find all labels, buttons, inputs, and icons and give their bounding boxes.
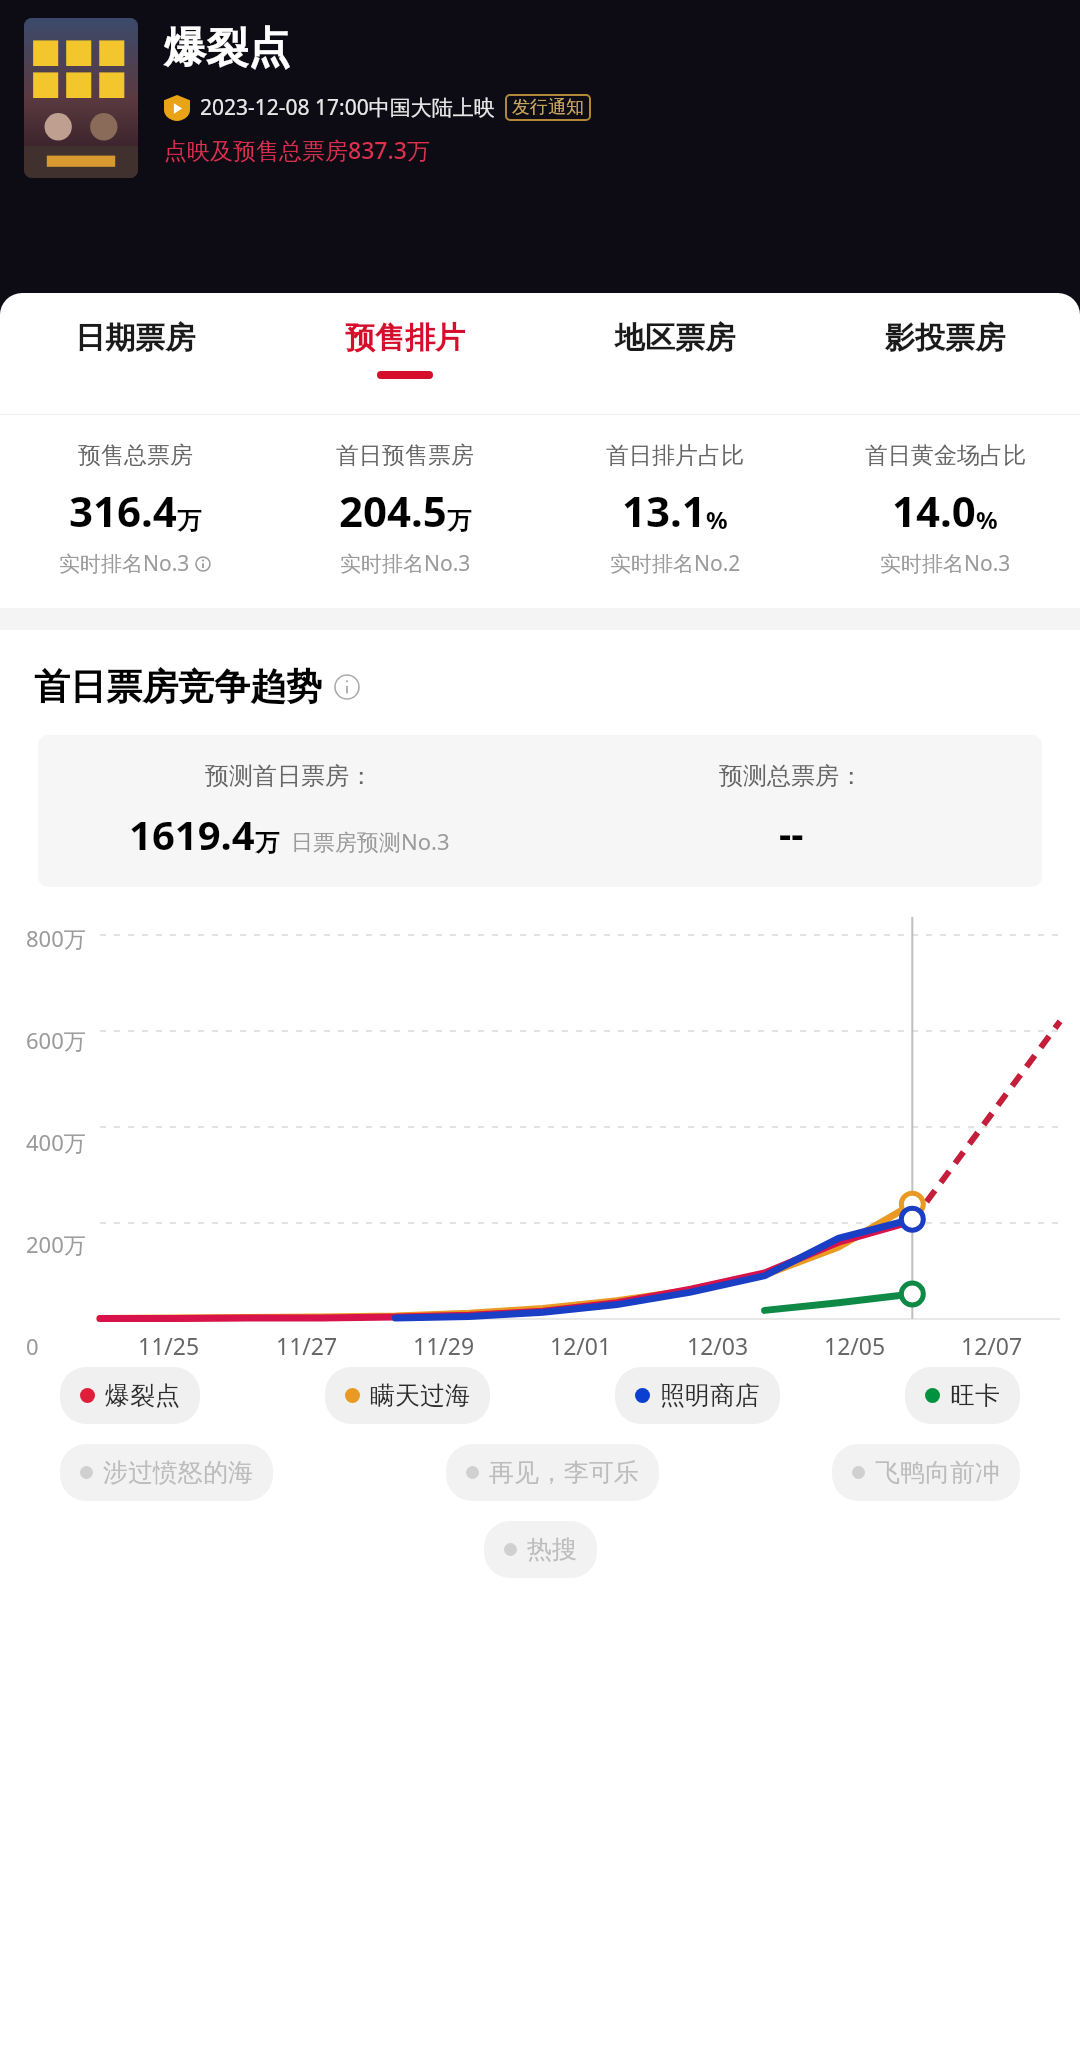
button[interactable]: 再见，李可乐 [446,1444,659,1501]
button[interactable]: 旺卡 [905,1367,1020,1424]
button[interactable]: 预测首日票房： [38,735,1042,887]
staticText: 200万 [26,1229,86,1259]
staticText: 预测首日票房： [205,761,373,791]
staticText: 11/27 [276,1330,338,1361]
staticText: 14.0 [892,482,976,539]
button[interactable]: 首日排片占比 [540,441,810,578]
button[interactable]: 预售排片 [270,319,540,415]
staticText: 旺卡 [950,1380,1000,1411]
button[interactable]: 首日黄金场占比 [810,441,1080,578]
staticText: 日期票房 [75,319,195,357]
staticText: 万 [177,506,201,536]
staticText: 点映及预售总票房837.3万 [164,134,430,165]
staticText: 400万 [26,1127,86,1157]
staticText: 实时排名No.3 [340,549,471,578]
button[interactable]: 影投票房 [810,319,1080,415]
staticText: 12/01 [550,1330,612,1361]
staticText: 0 [26,1331,39,1361]
button[interactable]: 地区票房 [540,319,810,415]
staticText: 万 [447,506,471,536]
staticText: 首日票房竞争趋势 [34,664,322,709]
staticText: 12/05 [824,1330,886,1361]
staticText: 预测总票房： [719,761,863,791]
button[interactable]: 爆裂点 [60,1367,200,1424]
staticText: 实时排名No.3 [880,549,1011,578]
button[interactable] [24,18,138,178]
button[interactable]: 涉过愤怒的海 [60,1444,273,1501]
staticText: 实时排名No.2 [610,549,741,578]
staticText: 首日排片占比 [606,441,744,470]
staticText: 800万 [26,923,86,953]
staticText: % [706,503,728,536]
button[interactable]: 预售总票房 [0,441,270,578]
staticText: 11/25 [138,1330,200,1361]
button[interactable]: 说明 [334,674,360,700]
button[interactable]: 瞒天过海 [325,1367,490,1424]
staticText: 2023-12-08 17:00中国大陆上映 [200,93,495,122]
staticText: % [976,503,998,536]
staticText: 热搜 [527,1534,577,1565]
staticText: 涉过愤怒的海 [103,1457,253,1488]
staticText: 316.4 [69,482,177,539]
staticText: 预售排片 [345,319,465,357]
staticText: 11/29 [413,1330,475,1361]
staticText: 12/07 [961,1330,1023,1361]
staticText: 12/03 [687,1330,749,1361]
button[interactable]: 飞鸭向前冲 [832,1444,1020,1501]
staticText: 万 [255,828,279,858]
staticText: 204.5 [339,482,447,539]
staticText: 发行通知 [512,96,584,119]
staticText: 地区票房 [615,319,735,357]
button[interactable]: 照明商店 [615,1367,780,1424]
staticText: 预售总票房 [78,441,193,470]
staticText: 爆裂点 [105,1380,180,1411]
staticText: 再见，李可乐 [489,1457,639,1488]
staticText: 爆裂点 [164,22,290,75]
staticText: 日票房预测No.3 [291,826,450,856]
staticText: 瞒天过海 [370,1380,470,1411]
button[interactable]: 发行通知 [512,96,584,119]
button[interactable]: 日期票房 [0,319,270,415]
staticText: -- [779,807,804,859]
staticText: 飞鸭向前冲 [875,1457,1000,1488]
staticText: 影投票房 [885,319,1005,357]
staticText: 600万 [26,1025,86,1055]
staticText: 照明商店 [660,1380,760,1411]
staticText: 首日黄金场占比 [865,441,1026,470]
staticText: 实时排名No.3 [59,549,190,578]
staticText: 1619.4 [129,807,255,861]
staticText: 首日预售票房 [336,441,474,470]
button[interactable]: 热搜 [484,1521,597,1578]
staticText: 13.1 [622,482,706,539]
button[interactable]: 首日预售票房 [270,441,540,578]
